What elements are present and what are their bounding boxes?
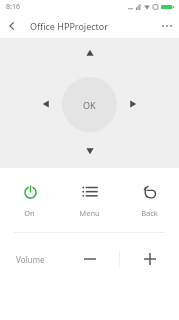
button[interactable]: Down [77, 138, 103, 164]
staticText: OK [83, 99, 96, 111]
other: Power on [21, 183, 39, 201]
button[interactable]: Volume up [120, 233, 179, 285]
button[interactable]: Back [119, 177, 179, 224]
button[interactable]: Power on [0, 177, 59, 224]
staticText: 8:16 [6, 2, 20, 12]
button[interactable]: Right [120, 91, 146, 117]
button[interactable]: OK [62, 77, 117, 132]
other: Back [140, 183, 158, 201]
staticText: Office HPProjector [30, 20, 108, 32]
staticText: Volume [16, 254, 45, 265]
button[interactable]: Menu [59, 177, 119, 224]
button[interactable]: Volume down [60, 233, 119, 285]
other: Menu [80, 183, 98, 201]
button[interactable]: Up [77, 40, 103, 66]
staticText: Back [141, 208, 158, 218]
staticText: Menu [79, 208, 100, 218]
staticText: On [24, 208, 35, 218]
button[interactable]: More options [155, 14, 179, 38]
button[interactable]: Left [33, 91, 59, 117]
button[interactable]: Back [0, 14, 24, 38]
